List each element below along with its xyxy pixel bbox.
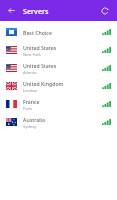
staticText: Sydney: [23, 124, 37, 129]
staticText: Best Choice: [23, 29, 52, 36]
staticText: United States: [23, 44, 57, 51]
other: Signal strength: [102, 65, 111, 71]
other: United Kingdom flag: [6, 82, 17, 90]
staticText: Australia: [23, 116, 45, 123]
button[interactable]: Back: [5, 4, 18, 17]
other: Signal strength: [102, 83, 111, 89]
other: Signal strength: [102, 101, 111, 107]
button[interactable]: United States flag: [0, 41, 117, 59]
staticText: United States: [23, 62, 57, 69]
button[interactable]: United States flag: [0, 59, 117, 77]
other: Australia flag: [6, 118, 17, 126]
button[interactable]: Refresh: [98, 4, 112, 18]
staticText: Paris: [23, 106, 33, 111]
other: Signal strength: [102, 47, 111, 53]
staticText: France: [23, 98, 40, 105]
other: France flag: [6, 100, 17, 108]
other: United States flag: [6, 64, 17, 72]
staticText: United Kingdom: [23, 80, 64, 87]
other: Best choice server: [6, 28, 17, 36]
staticText: London: [23, 88, 38, 93]
button[interactable]: United Kingdom flag: [0, 77, 117, 95]
button[interactable]: France flag: [0, 95, 117, 113]
button[interactable]: Australia flag: [0, 113, 117, 131]
other: Signal strength: [102, 29, 111, 35]
staticText: New York: [23, 52, 41, 57]
other: Signal strength: [102, 119, 111, 125]
button[interactable]: Best choice server: [0, 23, 117, 41]
staticText: Servers: [23, 6, 49, 16]
staticText: Atlanta: [23, 70, 37, 75]
other: United States flag: [6, 46, 17, 54]
